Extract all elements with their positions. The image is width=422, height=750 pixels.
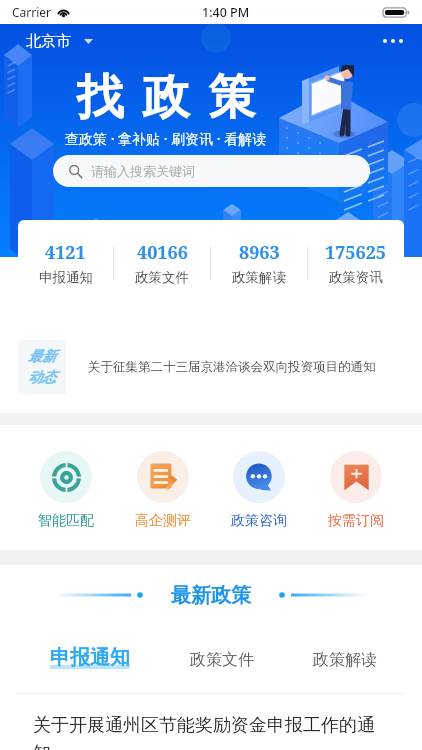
staticText: 政策解读 [232,269,286,286]
staticText: 最新政策 [171,583,251,608]
button[interactable]: 智能匹配 [32,451,100,530]
staticText: 申报通知 [50,645,130,670]
staticText: 政策资讯 [329,269,383,286]
button[interactable]: 北京市 [24,26,95,57]
staticText: 8963 [239,240,280,265]
staticText: 请输入搜索关键词 [91,163,195,179]
staticText: 政策咨询 [231,512,287,530]
button[interactable]: 申报通知 [48,641,132,674]
staticText: 4121 [45,240,86,265]
button[interactable]: 请输入搜索关键词 [53,155,370,187]
button[interactable]: 8963 [211,220,307,305]
staticText: 申报通知 [39,269,93,286]
button[interactable]: 最新 [18,340,404,394]
staticText: 关于征集第二十三届京港洽谈会双向投资项目的通知 [88,359,376,375]
staticText: 找政策 [67,68,265,127]
staticText: 政策文件 [190,650,254,670]
staticText: Carrier [12,4,52,20]
button[interactable]: 高企测评 [129,451,197,530]
staticText: 按需订阅 [328,512,384,530]
staticText: 1:40 PM [202,4,250,21]
staticText: 政策文件 [135,269,189,286]
button[interactable]: 4121 [18,220,113,305]
button[interactable]: 175625 [308,220,404,305]
staticText: 关于开展通州区节能奖励资金申报工作的通知 [33,714,383,750]
staticText: 智能匹配 [38,512,94,530]
staticText: 高企测评 [135,512,191,530]
staticText: 175625 [325,240,387,265]
button[interactable]: 政策咨询 [225,451,293,530]
staticText: 动态 [28,369,56,387]
button[interactable]: 40166 [114,220,210,305]
staticText: 40166 [137,240,188,265]
button[interactable]: More options [378,26,408,56]
staticText: 政策解读 [313,650,377,670]
staticText: 查政策 · 拿补贴 · 刷资讯 · 看解读 [65,129,267,148]
button[interactable]: 政策解读 [311,646,379,674]
button[interactable]: 按需订阅 [322,451,390,530]
staticText: 北京市 [26,32,71,51]
button[interactable]: 政策文件 [188,646,256,674]
staticText: 最新 [28,348,56,366]
